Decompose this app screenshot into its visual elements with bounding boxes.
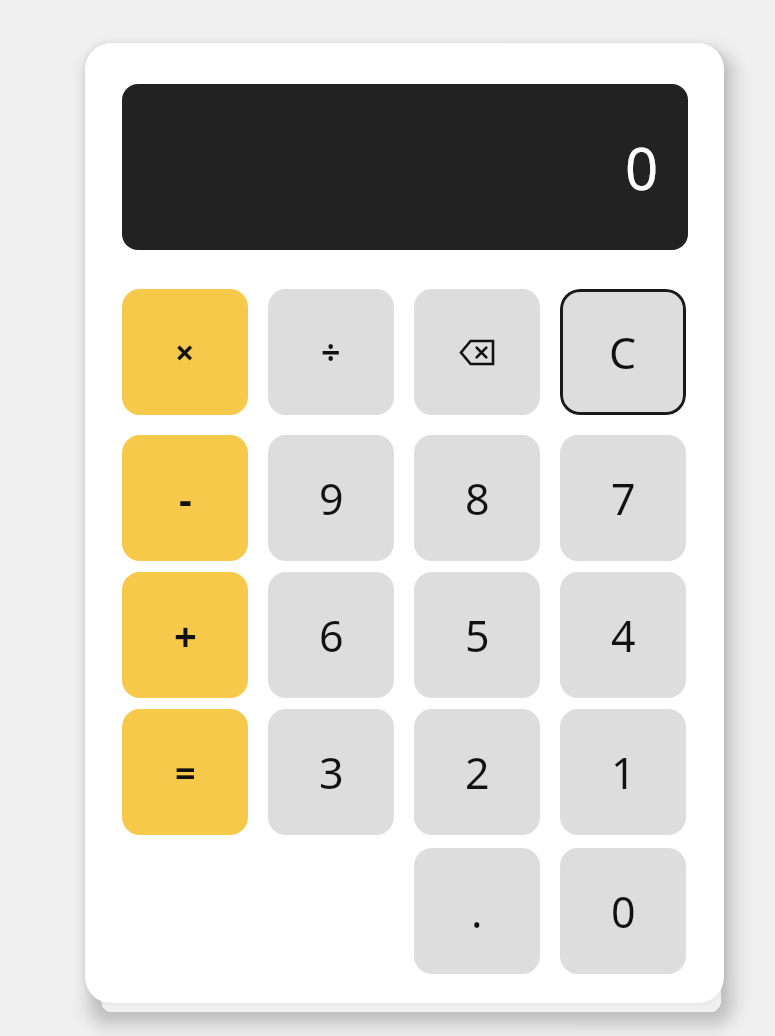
staticText: =	[175, 748, 196, 797]
button[interactable]: +	[122, 572, 248, 698]
staticText: 8	[465, 469, 490, 528]
staticText: +	[174, 608, 197, 662]
button[interactable]: -	[122, 435, 248, 561]
button[interactable]: 6	[268, 572, 394, 698]
staticText: 4	[611, 606, 636, 665]
button[interactable]: 1	[560, 709, 686, 835]
staticText: 6	[319, 606, 344, 665]
button[interactable]: ÷	[268, 289, 394, 415]
staticText: 0	[611, 882, 636, 941]
button[interactable]: Backspace	[414, 289, 540, 415]
button[interactable]: 5	[414, 572, 540, 698]
button[interactable]: C	[560, 289, 686, 415]
staticText: 7	[611, 469, 636, 528]
button[interactable]: 8	[414, 435, 540, 561]
staticText: ×	[175, 329, 195, 375]
staticText: ÷	[321, 329, 341, 375]
staticText: .	[471, 882, 483, 941]
staticText: 5	[465, 606, 490, 665]
staticText: 3	[319, 743, 344, 802]
button[interactable]: 2	[414, 709, 540, 835]
button[interactable]: =	[122, 709, 248, 835]
staticText: C	[609, 323, 637, 382]
button[interactable]: 0	[122, 84, 688, 250]
button[interactable]: 4	[560, 572, 686, 698]
button[interactable]: .	[414, 848, 540, 974]
button[interactable]: 7	[560, 435, 686, 561]
button[interactable]: 0	[560, 848, 686, 974]
staticText: 2	[465, 743, 490, 802]
button[interactable]: 3	[268, 709, 394, 835]
button[interactable]: 9	[268, 435, 394, 561]
staticText: 0	[625, 128, 659, 207]
button[interactable]: ×	[122, 289, 248, 415]
staticText: 1	[611, 743, 636, 802]
staticText: -	[179, 471, 192, 525]
staticText: 9	[319, 469, 344, 528]
